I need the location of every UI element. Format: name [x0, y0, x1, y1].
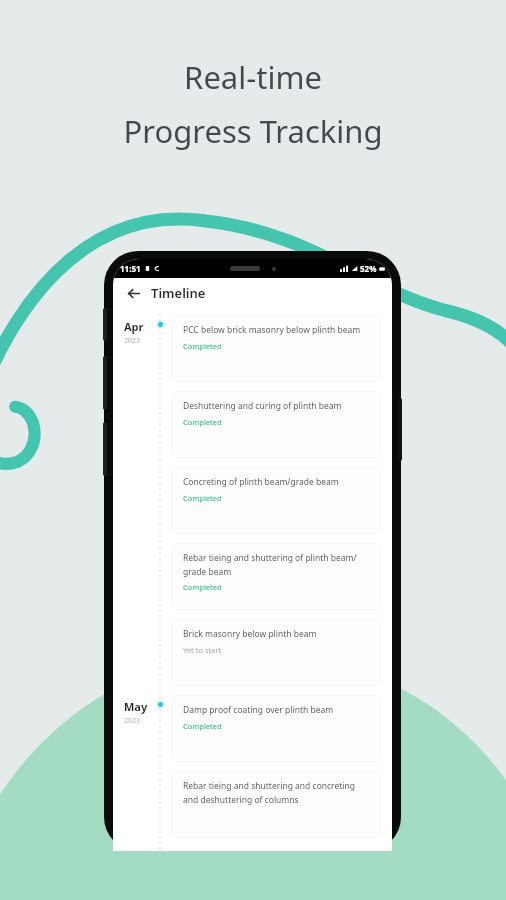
staticText: 11:51 [120, 263, 141, 274]
staticText: Completed [183, 341, 222, 351]
staticText: Damp proof coating over plinth beam [183, 704, 334, 716]
staticText: Progress Tracking [123, 110, 383, 152]
button[interactable]: Damp proof coating over plinth beam [172, 695, 381, 762]
staticText: Concreting of plinth beam/grade beam [183, 476, 339, 488]
button[interactable]: Back [124, 284, 142, 302]
staticText: Rebar tieing and shuttering and concreti… [183, 780, 371, 805]
button[interactable]: PCC below brick masonry below plinth bea… [172, 315, 381, 382]
staticText: Real-time [184, 56, 322, 98]
staticText: Brick masonry below plinth beam [183, 628, 317, 640]
staticText: 52% [360, 263, 377, 274]
staticText: Completed [183, 417, 222, 427]
button[interactable]: Deshuttering and curing of plinth beam [172, 391, 381, 458]
staticText: Apr [124, 319, 144, 334]
staticText: Completed [183, 493, 222, 503]
button[interactable]: Rebar tieing and shuttering and concreti… [172, 771, 381, 838]
staticText: Timeline [151, 284, 206, 302]
staticText: Completed [183, 582, 222, 592]
staticText: 2023 [124, 336, 141, 346]
staticText: PCC below brick masonry below plinth bea… [183, 324, 361, 336]
staticText: Yet to start [183, 645, 222, 655]
staticText: 2023 [124, 716, 141, 726]
staticText: May [124, 699, 148, 714]
button[interactable]: Rebar tieing and shuttering of plinth be… [172, 543, 381, 610]
staticText: Completed [183, 721, 222, 731]
button[interactable]: Concreting of plinth beam/grade beam [172, 467, 381, 534]
staticText: Deshuttering and curing of plinth beam [183, 400, 342, 412]
button[interactable]: Brick masonry below plinth beam [172, 619, 381, 686]
staticText: Rebar tieing and shuttering of plinth be… [183, 552, 371, 577]
